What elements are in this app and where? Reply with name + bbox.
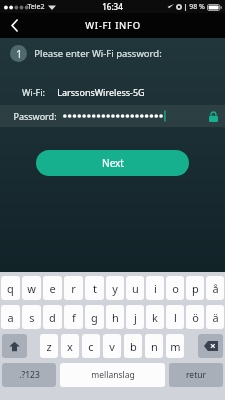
staticText: g (91, 310, 98, 325)
staticText: ä (212, 310, 219, 325)
button[interactable]: ä (206, 305, 224, 329)
staticText: Next (102, 156, 124, 170)
button[interactable]: å (206, 276, 224, 300)
staticText: p (192, 281, 199, 296)
button[interactable]: mellanslag (60, 363, 165, 387)
button[interactable]: r (64, 276, 83, 300)
staticText: w (27, 281, 36, 296)
staticText: a (7, 310, 14, 325)
button[interactable]: q (1, 276, 20, 300)
button[interactable]: Password: (0, 105, 225, 127)
button[interactable]: p (186, 276, 204, 300)
button[interactable]: m (166, 334, 184, 358)
staticText: b (130, 339, 137, 354)
button[interactable]: e (43, 276, 62, 300)
staticText: v (109, 339, 115, 354)
staticText: x (67, 339, 73, 354)
button[interactable]: a (1, 305, 20, 329)
staticText: LarssonsWireless-5G (57, 86, 145, 98)
button[interactable]: .?123 (2, 363, 56, 387)
staticText: j (134, 310, 137, 325)
staticText: e (49, 281, 56, 296)
button[interactable]: x (61, 334, 79, 358)
staticText: r (71, 281, 76, 296)
staticText: 98 % (189, 2, 205, 12)
staticText: q (7, 281, 14, 296)
button[interactable]: n (145, 334, 163, 358)
staticText: mellanslag (91, 369, 135, 381)
staticText: 16:34 (102, 1, 123, 12)
button[interactable]: y (106, 276, 124, 300)
staticText: WI-FI INFO (85, 19, 141, 32)
button[interactable]: k (146, 305, 164, 329)
staticText: y (112, 281, 118, 296)
staticText: k (152, 310, 158, 325)
button[interactable]: w (22, 276, 41, 300)
staticText: t (93, 281, 97, 296)
staticText: ö (192, 310, 199, 325)
staticText: c (88, 339, 94, 354)
button[interactable]: Next (36, 150, 189, 176)
staticText: Tele2 (27, 2, 45, 12)
button[interactable]: Backspace (198, 334, 223, 358)
button[interactable]: v (103, 334, 121, 358)
staticText: retur (186, 369, 206, 381)
staticText: n (151, 339, 158, 354)
staticText: l (174, 310, 177, 325)
staticText: 1 (16, 47, 22, 61)
staticText: o (172, 281, 179, 296)
staticText: d (49, 310, 56, 325)
button[interactable]: l (166, 305, 184, 329)
button[interactable]: t (85, 276, 104, 300)
button[interactable]: u (126, 276, 144, 300)
button[interactable]: ö (186, 305, 204, 329)
staticText: .?123 (19, 369, 40, 381)
button[interactable]: retur (169, 363, 223, 387)
button[interactable]: d (43, 305, 62, 329)
button[interactable]: o (166, 276, 184, 300)
button[interactable]: j (126, 305, 144, 329)
button[interactable]: Back (0, 13, 30, 38)
staticText: z (46, 339, 52, 354)
staticText: h (112, 310, 119, 325)
staticText: Wi-Fi: (22, 86, 45, 98)
button[interactable]: Shift (2, 334, 27, 358)
staticText: Password: (13, 110, 57, 122)
button[interactable]: g (85, 305, 104, 329)
button[interactable]: c (82, 334, 100, 358)
button[interactable]: f (64, 305, 83, 329)
staticText: f (72, 310, 76, 325)
button[interactable]: s (22, 305, 41, 329)
button[interactable]: z (40, 334, 58, 358)
button[interactable]: b (124, 334, 142, 358)
button[interactable]: i (146, 276, 164, 300)
staticText: å (212, 281, 219, 296)
staticText: i (154, 281, 157, 296)
staticText: s (29, 310, 35, 325)
button[interactable]: h (106, 305, 124, 329)
staticText: Please enter Wi-Fi password: (34, 47, 162, 60)
staticText: u (132, 281, 139, 296)
staticText: m (170, 339, 181, 354)
